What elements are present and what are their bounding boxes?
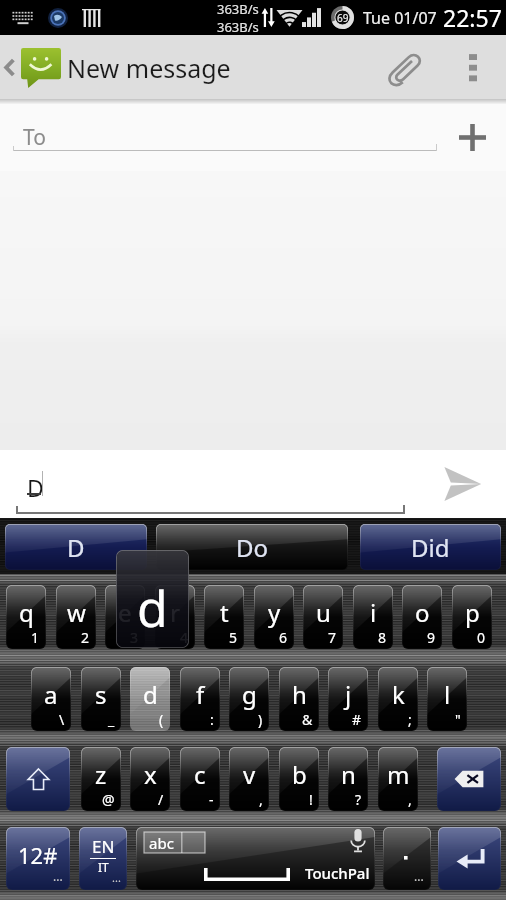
staticText: b [292, 758, 307, 791]
staticText: 12# [18, 840, 58, 870]
staticText: i [370, 596, 377, 629]
staticText: - [209, 790, 214, 809]
button[interactable]: k [378, 667, 418, 731]
staticText: abc [149, 833, 174, 853]
button[interactable]: x [130, 747, 170, 811]
button[interactable]: v [229, 747, 269, 811]
staticText: w [67, 596, 86, 629]
button[interactable]: Space [136, 827, 375, 890]
button[interactable]: EN [79, 827, 127, 890]
staticText: _ [108, 710, 115, 729]
staticText: ... [414, 868, 424, 884]
button[interactable]: Do [156, 524, 348, 570]
staticText: s [95, 678, 107, 711]
staticText: c [194, 758, 206, 791]
staticText: , [408, 790, 412, 809]
staticText: 7 [328, 628, 337, 647]
button[interactable]: y [254, 585, 294, 649]
staticText: , [259, 790, 263, 809]
button[interactable]: w [56, 585, 96, 649]
staticText: " [455, 710, 461, 729]
staticText: D [27, 472, 44, 503]
button[interactable]: Shift [6, 747, 70, 811]
button[interactable]: t [204, 585, 244, 649]
button[interactable]: o [402, 585, 442, 649]
button[interactable]: Add recipient [446, 111, 498, 163]
button[interactable]: j [328, 667, 368, 731]
button[interactable]: Did [360, 524, 501, 570]
button[interactable]: 12# [6, 827, 70, 890]
staticText: t [220, 596, 229, 629]
staticText: ( [159, 710, 164, 729]
staticText: TouchPal [305, 863, 370, 883]
button[interactable]: Back [0, 47, 67, 87]
button[interactable]: D [5, 524, 147, 570]
button[interactable]: d [130, 667, 170, 731]
button[interactable]: a [31, 667, 71, 731]
staticText: y [268, 596, 281, 629]
button[interactable]: z [81, 747, 121, 811]
button[interactable]: m [378, 747, 418, 811]
staticText: a [44, 678, 58, 711]
staticText: ; [408, 710, 412, 729]
button[interactable]: Send [432, 456, 492, 512]
button[interactable]: u [303, 585, 343, 649]
staticText: 3 [130, 628, 139, 647]
staticText: d [137, 574, 168, 642]
button[interactable]: e [105, 585, 145, 649]
staticText: 363B/s [217, 0, 259, 18]
staticText: q [19, 596, 34, 629]
button[interactable]: Backspace [437, 747, 501, 811]
staticText: New message [67, 51, 231, 85]
button[interactable]: n [328, 747, 368, 811]
button[interactable]: b [279, 747, 319, 811]
staticText: 6 [279, 628, 288, 647]
staticText: d [143, 678, 158, 711]
staticText: 8 [378, 628, 387, 647]
button[interactable]: h [279, 667, 319, 731]
staticText: u [316, 596, 331, 629]
staticText: ... [112, 870, 121, 885]
staticText: ) [258, 710, 263, 729]
button[interactable]: Enter [438, 827, 501, 890]
button[interactable]: More options [440, 35, 506, 99]
staticText: 1 [31, 628, 40, 647]
staticText: 69 [337, 11, 349, 25]
staticText: o [415, 596, 430, 629]
staticText: f [196, 678, 205, 711]
staticText: n [341, 758, 356, 791]
staticText: # [352, 710, 362, 729]
staticText: h [292, 678, 307, 711]
staticText: Tue 01/07 [363, 7, 437, 29]
staticText: D [67, 531, 85, 564]
staticText: 9 [427, 628, 436, 647]
button[interactable]: p [452, 585, 492, 649]
staticText: Do [236, 531, 269, 564]
staticText: r [170, 596, 180, 629]
button[interactable]: i [353, 585, 393, 649]
staticText: j [345, 678, 352, 711]
staticText: g [242, 678, 257, 711]
button[interactable]: Attach [368, 35, 440, 99]
button[interactable]: r [155, 585, 195, 649]
button[interactable]: q [6, 585, 46, 649]
staticText: \ [59, 710, 65, 729]
staticText: 22:57 [443, 2, 502, 33]
staticText: m [387, 758, 410, 791]
button[interactable]: s [81, 667, 121, 731]
staticText: ! [309, 790, 313, 809]
staticText: & [302, 710, 313, 729]
button[interactable]: c [180, 747, 220, 811]
button[interactable]: Period [383, 827, 431, 890]
staticText: k [392, 678, 405, 711]
staticText: 363B/s [217, 18, 259, 35]
staticText: p [465, 596, 480, 629]
button[interactable]: g [229, 667, 269, 731]
staticText: Did [411, 531, 450, 564]
button[interactable]: f [180, 667, 220, 731]
staticText: @ [102, 790, 115, 809]
staticText: l [444, 678, 451, 711]
button[interactable]: l [427, 667, 467, 731]
button[interactable]: To [23, 123, 46, 152]
staticText: z [95, 758, 107, 791]
